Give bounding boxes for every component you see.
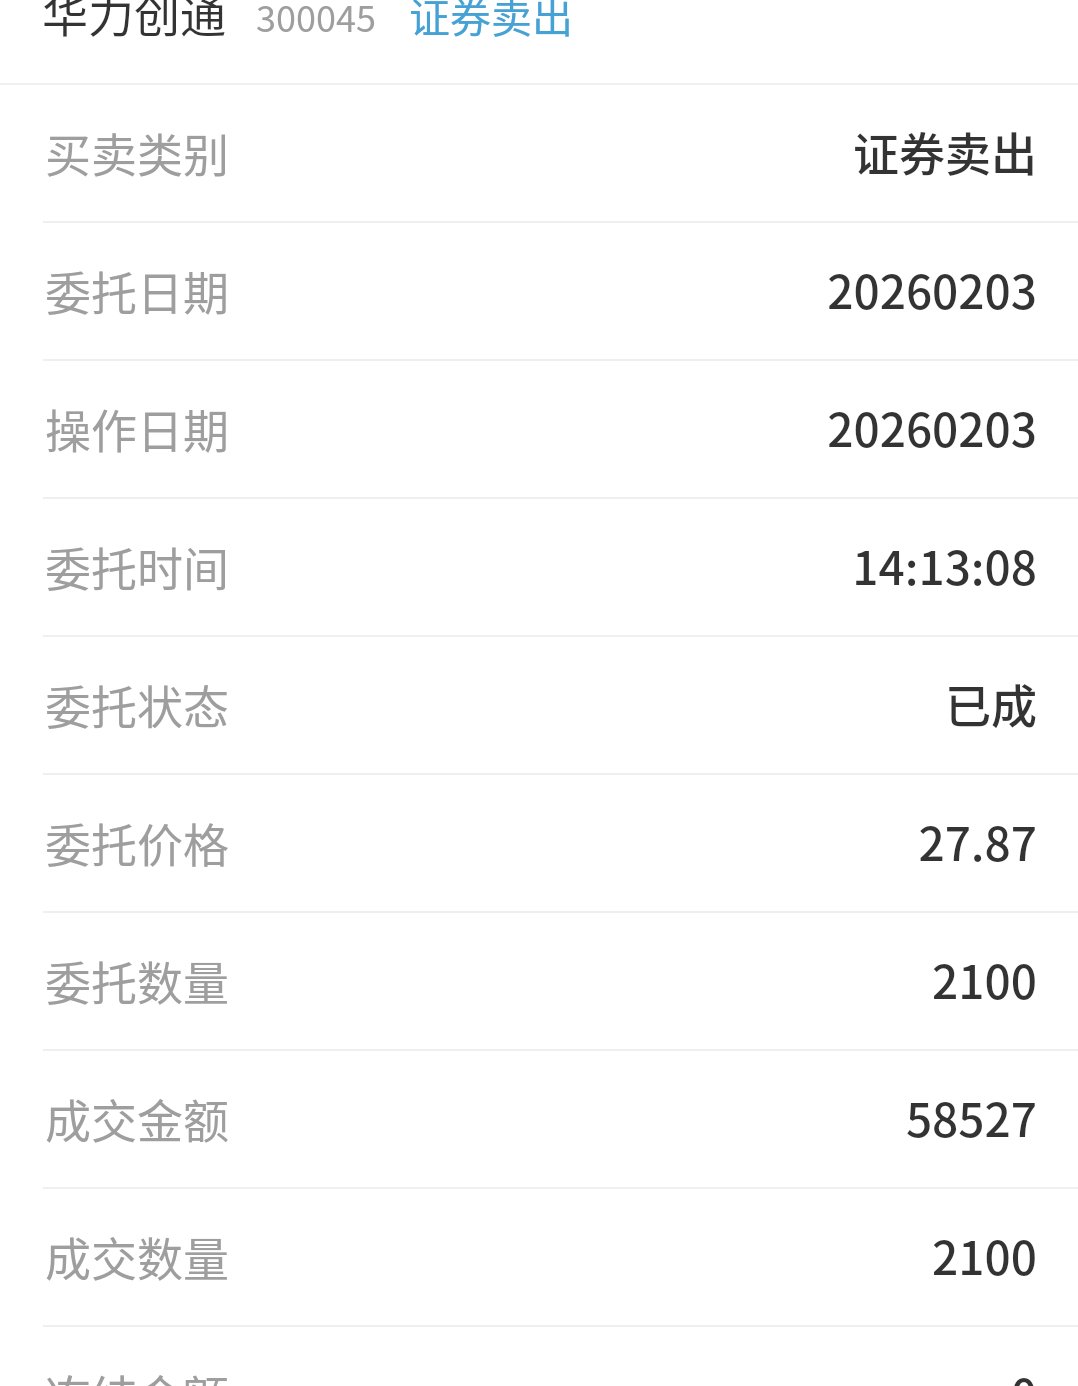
button[interactable]: 操作日期 — [0, 361, 1078, 497]
staticText: 20260203 — [827, 256, 1037, 323]
staticText: 委托日期 — [45, 257, 229, 324]
staticText: 买卖类别 — [45, 119, 229, 186]
staticText: 成交金额 — [45, 1085, 229, 1152]
button[interactable]: 委托日期 — [0, 223, 1078, 359]
button[interactable]: 委托状态 — [0, 637, 1078, 773]
button[interactable]: 华力创通 — [0, 0, 1078, 83]
button[interactable]: 成交金额 — [0, 1051, 1078, 1187]
staticText: 2100 — [932, 946, 1037, 1013]
staticText: 2100 — [932, 1222, 1037, 1289]
staticText: 已成 — [945, 670, 1037, 737]
staticText: 成交数量 — [45, 1223, 229, 1290]
staticText: 27.87 — [918, 808, 1037, 875]
staticText: 300045 — [256, 0, 376, 42]
staticText: 委托数量 — [45, 947, 229, 1014]
staticText: 58527 — [905, 1084, 1037, 1151]
staticText: 证券卖出 — [853, 118, 1037, 185]
staticText: 证券卖出 — [409, 0, 573, 44]
staticText: 0 — [1010, 1360, 1037, 1386]
staticText: 冻结金额 — [45, 1361, 229, 1386]
staticText: 华力创通 — [42, 0, 226, 46]
staticText: 操作日期 — [45, 395, 229, 462]
button[interactable]: 成交数量 — [0, 1189, 1078, 1325]
staticText: 20260203 — [827, 394, 1037, 461]
button[interactable]: 冻结金额 — [0, 1327, 1078, 1386]
staticText: 委托时间 — [45, 533, 229, 600]
button[interactable]: 买卖类别 — [0, 85, 1078, 221]
button[interactable]: 委托价格 — [0, 775, 1078, 911]
staticText: 14:13:08 — [852, 532, 1037, 599]
staticText: 委托价格 — [45, 809, 229, 876]
button[interactable]: 委托时间 — [0, 499, 1078, 635]
button[interactable]: 委托数量 — [0, 913, 1078, 1049]
staticText: 委托状态 — [45, 671, 229, 738]
